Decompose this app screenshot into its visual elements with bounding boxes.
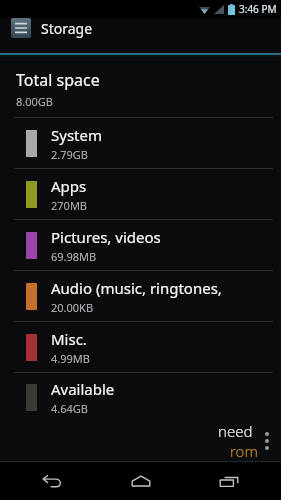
staticText: rom — [230, 441, 258, 461]
staticText: Pictures, videos — [51, 227, 161, 247]
other: Storage — [11, 18, 31, 38]
button[interactable]: Back — [16, 462, 88, 500]
staticText: 4.64GB — [51, 401, 88, 416]
staticText: System — [51, 125, 102, 145]
staticText: Misc. — [51, 329, 87, 349]
staticText: 270MB — [51, 198, 88, 213]
button[interactable]: Home — [105, 462, 177, 500]
button[interactable]: Pictures, videos — [0, 220, 281, 270]
button[interactable]: Misc. — [0, 322, 281, 372]
button[interactable]: Available — [0, 373, 281, 421]
staticText: Total space — [16, 69, 100, 91]
staticText: need — [218, 421, 253, 441]
staticText: Available — [51, 379, 115, 399]
button[interactable]: Apps — [0, 169, 281, 219]
staticText: 3:46 PM — [239, 2, 277, 16]
staticText: Apps — [51, 176, 87, 196]
staticText: 69.98MB — [51, 249, 97, 264]
staticText: Audio (music, ringtones, podcasts) — [51, 278, 281, 298]
staticText: Storage — [41, 19, 93, 38]
staticText: 8.00GB — [16, 94, 53, 109]
button[interactable]: More options — [259, 428, 275, 454]
button[interactable]: Recent apps — [193, 462, 265, 500]
button[interactable]: Total space — [0, 67, 281, 117]
staticText: 20.00KB — [51, 300, 94, 315]
staticText: 4.99MB — [51, 351, 90, 366]
staticText: 2.79GB — [51, 147, 88, 162]
button[interactable]: System — [0, 118, 281, 168]
button[interactable]: Audio (music, ringtones, podcasts) — [0, 271, 281, 321]
